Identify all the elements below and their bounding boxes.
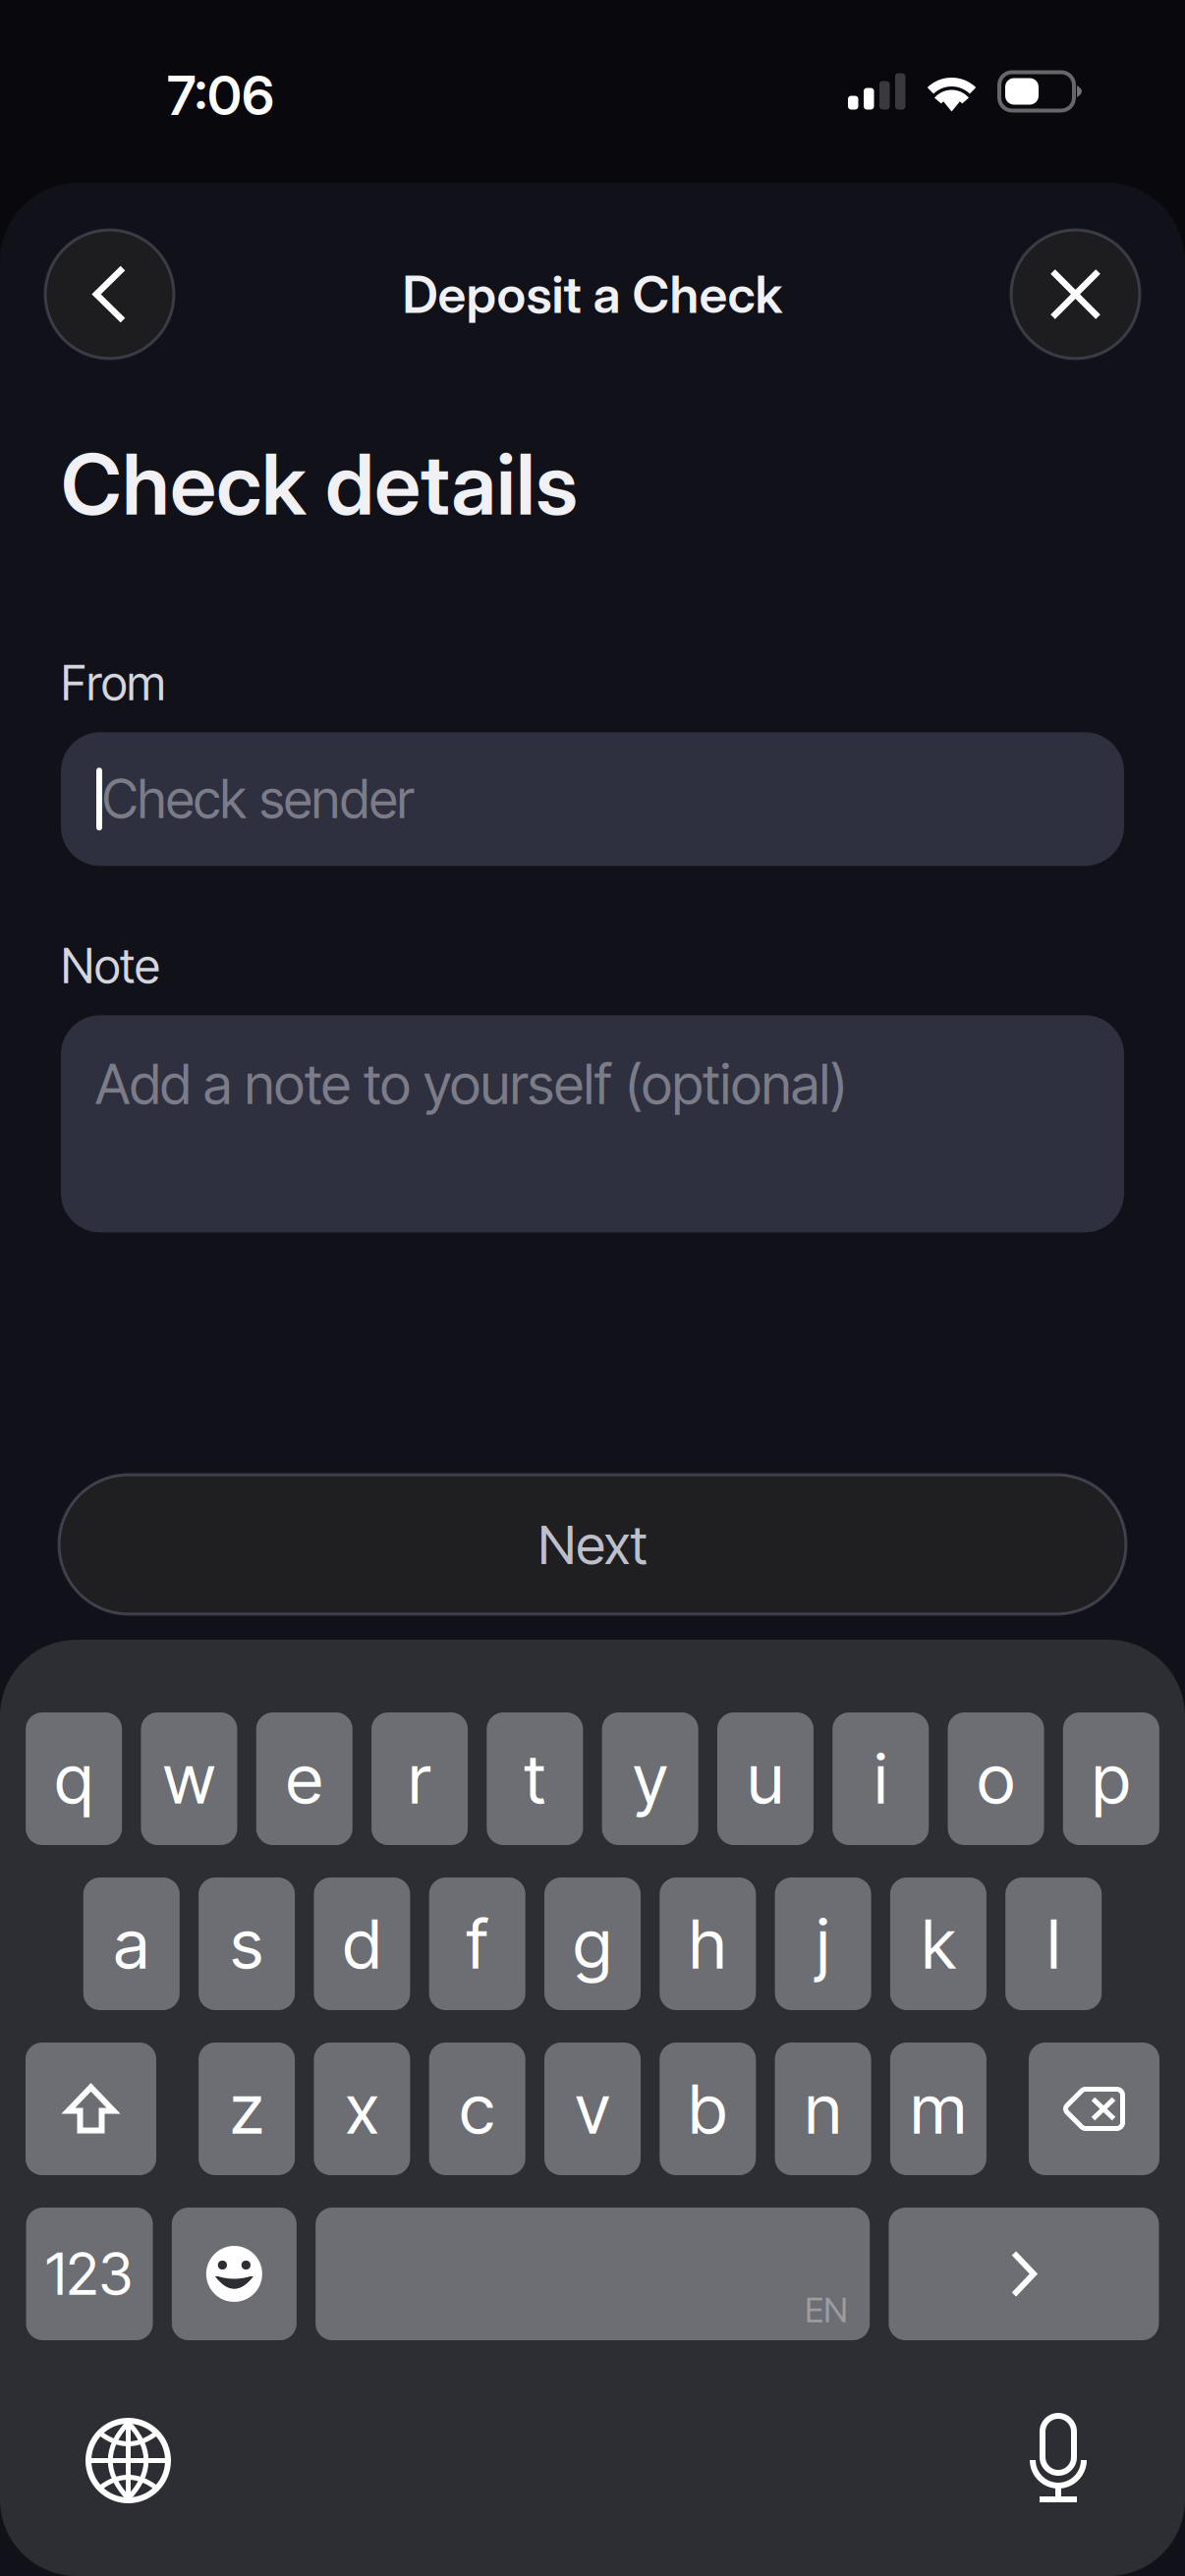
button[interactable]: j [775,1877,871,2010]
staticText: r [408,1738,431,1820]
staticText: t [524,1738,546,1820]
button[interactable]: z [199,2043,295,2175]
staticText: Check sender [102,767,414,831]
staticText: i [874,1738,887,1820]
staticText: h [689,1903,726,1985]
staticText: w [163,1738,215,1820]
button[interactable]: Delete [1029,2043,1159,2175]
staticText: u [747,1738,784,1820]
button[interactable]: x [314,2043,410,2175]
button[interactable]: Return [889,2208,1159,2340]
staticText: g [573,1903,612,1985]
button[interactable]: p [1063,1712,1159,1845]
button[interactable]: k [890,1877,986,2010]
button[interactable]: m [890,2043,986,2175]
staticText: y [633,1738,667,1820]
staticText: m [910,2068,966,2150]
staticText: c [460,2068,495,2150]
button[interactable]: Next keyboard [88,2421,168,2500]
button[interactable]: e [256,1712,353,1845]
staticText: b [689,2068,727,2150]
staticText: j [817,1903,829,1985]
staticText: EN [805,2289,848,2330]
staticText: p [1092,1738,1130,1820]
button[interactable]: h [660,1877,756,2010]
staticText: Add a note to yourself (optional) [95,1051,848,1117]
staticText: o [977,1738,1015,1820]
button[interactable]: r [371,1712,468,1845]
staticText: e [286,1738,322,1820]
staticText: 123 [46,2239,133,2309]
button[interactable]: s [199,1877,295,2010]
button[interactable]: Emoji [172,2208,297,2340]
staticText: d [343,1903,381,1985]
button[interactable]: 123 [26,2208,153,2340]
button[interactable]: v [544,2043,641,2175]
button[interactable]: Next [0,1475,1185,1614]
button[interactable]: f [429,1877,525,2010]
staticText: 7:06 [167,63,274,128]
staticText: q [55,1738,93,1820]
button[interactable]: d [314,1877,410,2010]
button[interactable]: i [832,1712,929,1845]
button[interactable]: t [487,1712,583,1845]
button[interactable]: o [948,1712,1044,1845]
button[interactable]: a [83,1877,180,2010]
button[interactable]: y [602,1712,698,1845]
button[interactable]: space [316,2208,870,2340]
button[interactable]: c [429,2043,525,2175]
staticText: v [575,2068,610,2150]
button[interactable]: Back [45,230,174,359]
staticText: f [466,1903,488,1985]
button[interactable]: g [544,1877,641,2010]
staticText: Check details [61,433,578,535]
button[interactable]: l [1005,1877,1102,2010]
staticText: Note [61,938,160,995]
staticText: l [1047,1903,1060,1985]
button[interactable]: u [717,1712,813,1845]
staticText: z [230,2068,263,2150]
button[interactable]: Close [1011,230,1140,359]
staticText: From [61,655,166,712]
staticText: a [114,1903,149,1985]
staticText: Next [538,1512,647,1577]
button[interactable]: Dictate [1030,2400,1087,2489]
button[interactable]: b [660,2043,756,2175]
button[interactable]: Shift [26,2043,156,2175]
staticText: n [805,2068,841,2150]
staticText: k [922,1903,955,1985]
button[interactable]: q [26,1712,122,1845]
staticText: s [231,1903,263,1985]
staticText: x [345,2068,379,2150]
button[interactable]: n [775,2043,871,2175]
staticText: Deposit a Check [402,263,783,325]
button[interactable]: w [141,1712,237,1845]
